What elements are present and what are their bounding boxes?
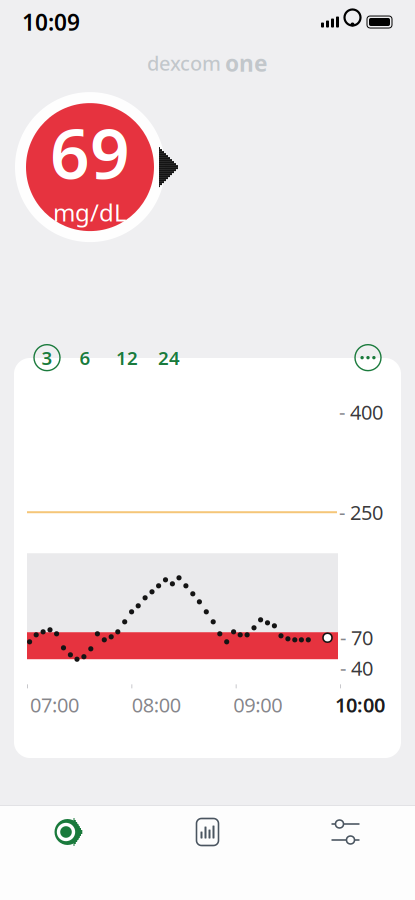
staticText: 3: [41, 345, 52, 370]
staticText: 07:00: [30, 691, 79, 718]
button[interactable]: 6: [64, 341, 106, 375]
button[interactable]: More options: [351, 341, 385, 375]
staticText: dexcom: [147, 50, 221, 76]
staticText: 400: [345, 399, 383, 425]
button[interactable]: Reports: [138, 806, 276, 858]
staticText: -: [340, 624, 346, 651]
staticText: 40: [346, 655, 373, 681]
staticText: 250: [345, 499, 383, 525]
button[interactable]: Glucose: [0, 806, 138, 858]
staticText: 10:09: [22, 7, 80, 37]
staticText: mg/dL: [53, 196, 127, 228]
staticText: 70: [346, 624, 373, 651]
staticText: 12: [116, 345, 138, 370]
staticText: -: [339, 399, 345, 425]
staticText: one: [225, 48, 268, 78]
staticText: 10:00: [335, 691, 385, 718]
staticText: 08:00: [132, 691, 181, 718]
staticText: 6: [79, 345, 90, 370]
staticText: 09:00: [233, 691, 282, 718]
button[interactable]: 3: [30, 341, 64, 375]
staticText: 69: [50, 106, 130, 198]
button[interactable]: 12: [106, 341, 148, 375]
button[interactable]: 24: [148, 341, 190, 375]
staticText: 24: [158, 345, 180, 370]
button[interactable]: Settings: [276, 806, 414, 858]
staticText: -: [340, 655, 346, 681]
staticText: -: [339, 499, 345, 525]
